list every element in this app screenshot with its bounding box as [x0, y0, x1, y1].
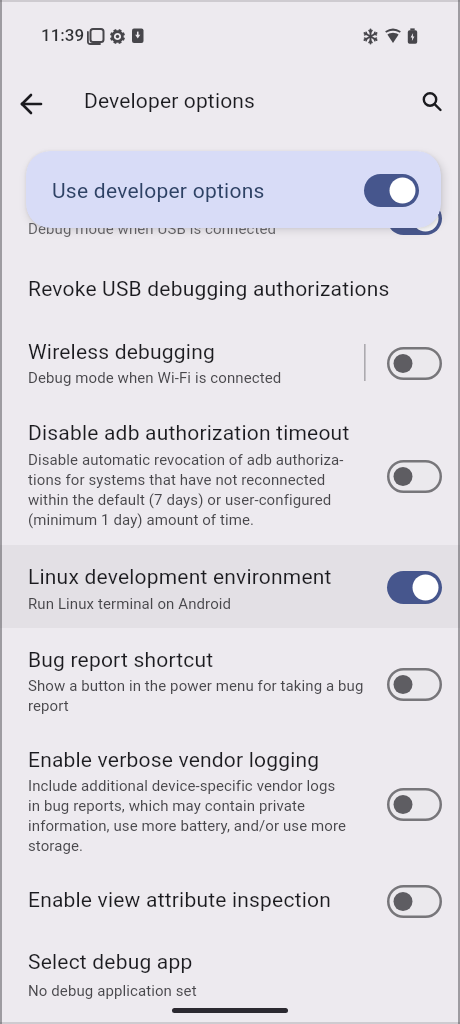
staticText: Wireless debugging — [28, 340, 215, 365]
staticText: Enable view attribute inspection — [28, 888, 331, 913]
staticText: Select debug app — [28, 950, 193, 975]
button[interactable]: Enable verbose vendor logging — [0, 740, 460, 862]
button[interactable]: Use developer options — [26, 151, 441, 228]
staticText: Show a button in the power menu for taki… — [28, 677, 364, 714]
staticText: Linux development environment — [28, 565, 332, 590]
staticText: Include additional device-specific vendo… — [28, 777, 347, 854]
button[interactable]: Revoke USB debugging authorizations — [0, 256, 460, 326]
staticText: No debug application set — [28, 982, 197, 1000]
button[interactable]: Disable adb authorization timeout — [0, 412, 460, 538]
staticText: Disable automatic revocation of adb auth… — [28, 451, 344, 528]
staticText: Debug mode when USB is connected — [28, 220, 277, 238]
staticText: Use developer options — [52, 179, 265, 204]
staticText: Developer options — [84, 89, 256, 114]
button[interactable]: Bug report shortcut — [0, 638, 460, 738]
staticText: Revoke USB debugging authorizations — [28, 277, 390, 302]
staticText: Run Linux terminal on Android — [28, 595, 232, 613]
staticText: Bug report shortcut — [28, 648, 214, 673]
staticText: 11:39 — [41, 25, 85, 45]
staticText: Enable verbose vendor logging — [28, 748, 320, 773]
staticText: Debug mode when Wi-Fi is connected — [28, 369, 282, 387]
button[interactable]: Enable view attribute inspection — [0, 872, 460, 934]
staticText: Disable adb authorization timeout — [28, 421, 350, 446]
button[interactable] — [10, 88, 54, 120]
button[interactable]: Wireless debugging — [0, 330, 460, 402]
button[interactable] — [412, 84, 452, 120]
button[interactable]: Linux development environment — [0, 545, 460, 628]
button[interactable]: Select debug app — [0, 940, 460, 1010]
